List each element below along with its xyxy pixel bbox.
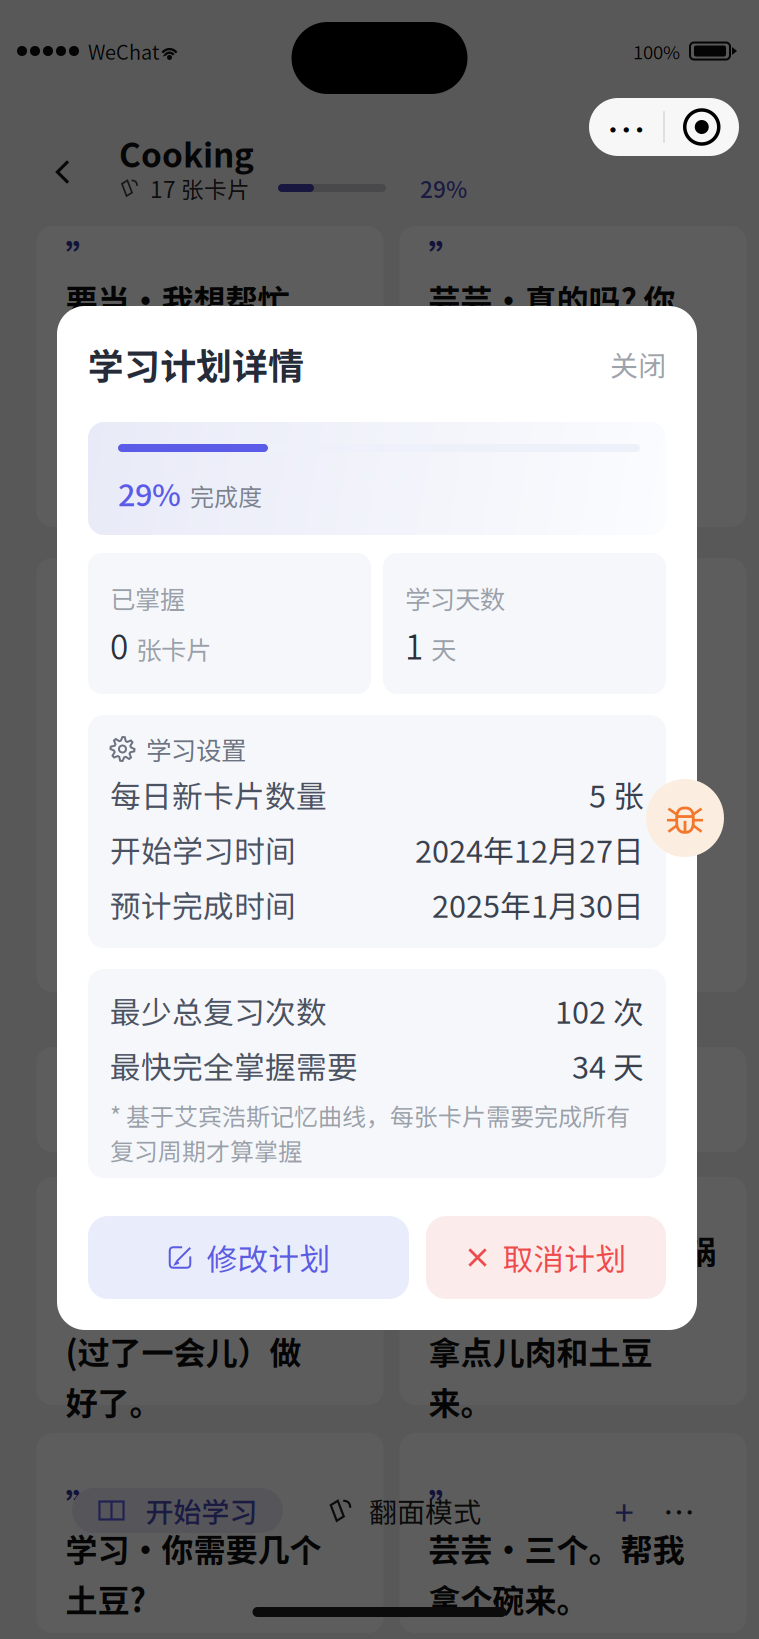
staticText: 34 天 [572, 1043, 644, 1088]
staticText: 关闭 [610, 344, 666, 384]
staticText: 102 次 [555, 988, 644, 1033]
staticText: 王小·切土豆。 [65, 1097, 289, 1143]
staticText: 放在火上，再 [428, 1277, 620, 1324]
staticText: 100% [633, 37, 680, 64]
staticText: WeChat [88, 36, 159, 65]
staticText: 预计完成时间 [110, 882, 296, 927]
staticText: 学习设置 [146, 731, 246, 767]
staticText: 拿点儿肉和土豆 [428, 1328, 652, 1374]
staticText: 翻面模式 [369, 1490, 481, 1531]
staticText: ⋯ [663, 1487, 695, 1534]
staticText: 学习·你需要几个 [65, 1525, 321, 1571]
staticText: ⋯ [606, 98, 646, 156]
staticText: 王小·把肉切成片， [65, 1227, 353, 1273]
button[interactable]: 翻面模式 [327, 1488, 481, 1533]
staticText: * 基于艾宾浩斯记忆曲线，每张卡片需要完成所有复习周期才算掌握 [110, 1098, 630, 1167]
staticText: 天 [431, 630, 456, 667]
staticText: 取消计划 [502, 1235, 626, 1280]
staticText: ” [65, 1480, 100, 1530]
staticText: 张卡片 [136, 630, 211, 667]
staticText: ” [428, 1182, 463, 1232]
staticText: ” [65, 563, 100, 613]
staticText: 最少总复习次数 [110, 988, 327, 1033]
staticText: 芸芸·好的。 [428, 1097, 620, 1143]
staticText: 完成度 [190, 478, 262, 513]
staticText: 已掌握 [110, 580, 185, 616]
staticText: 29% [118, 471, 181, 515]
staticText: 芸芸·好的，你把锅 [428, 1227, 716, 1273]
staticText: ” [65, 1182, 100, 1232]
staticText: 17 张卡片 [150, 172, 250, 204]
staticText: 拿个碗来。 [428, 1575, 588, 1622]
staticText: 29% [420, 172, 467, 204]
staticText: 做饭。 [65, 326, 161, 373]
button[interactable]: 取消计划 [426, 1216, 666, 1299]
staticText: 学习计划详情 [88, 338, 304, 390]
staticText: 来。 [428, 1378, 492, 1424]
staticText: 芸芸·三个。帮我 [428, 1525, 684, 1571]
staticText: 芸芸·真的吗? 你 [428, 276, 675, 322]
button[interactable]: 开始学习 [72, 1488, 283, 1533]
staticText: 每日新卡片数量 [110, 772, 327, 817]
staticText: 2024年12月27日 [415, 827, 644, 872]
button[interactable]: More [651, 1488, 707, 1533]
staticText: Cooking [119, 129, 254, 177]
staticText: 修改计划 [206, 1235, 330, 1280]
staticText: 开始学习时间 [110, 827, 296, 872]
staticText: 1 [405, 621, 423, 669]
staticText: 学习天数 [405, 580, 505, 616]
staticText: 师傅·好的，我 [65, 608, 289, 654]
staticText: 要当·我想帮忙 [65, 276, 289, 322]
button[interactable]: 修改计划 [88, 1216, 409, 1299]
staticText: 最快完全掌握需要 [110, 1043, 358, 1088]
staticText: ” [428, 1480, 463, 1530]
staticText: 芸芸·你先把土 [428, 608, 652, 654]
staticText: 0 [110, 621, 128, 669]
staticText: ” [65, 231, 100, 281]
staticText: (过了一会儿）做 [65, 1328, 301, 1374]
staticText: ” [428, 231, 463, 281]
staticText: 开始学习 [145, 1490, 257, 1531]
staticText: 然后放油，再放肉。 [65, 1277, 353, 1324]
staticText: 好了。 [65, 1378, 161, 1424]
staticText: 2025年1月30日 [432, 882, 644, 927]
staticText: 豆切成丝。 [428, 658, 588, 705]
staticText: 土豆? [65, 1575, 145, 1622]
staticText: ” [65, 1052, 100, 1102]
button[interactable]: Add [597, 1488, 651, 1533]
staticText: 先洗菜。 [65, 658, 193, 705]
staticText: + [614, 1485, 633, 1536]
button[interactable]: 关闭 [610, 337, 666, 391]
staticText: 5 张 [589, 772, 644, 817]
staticText: ” [428, 563, 463, 613]
